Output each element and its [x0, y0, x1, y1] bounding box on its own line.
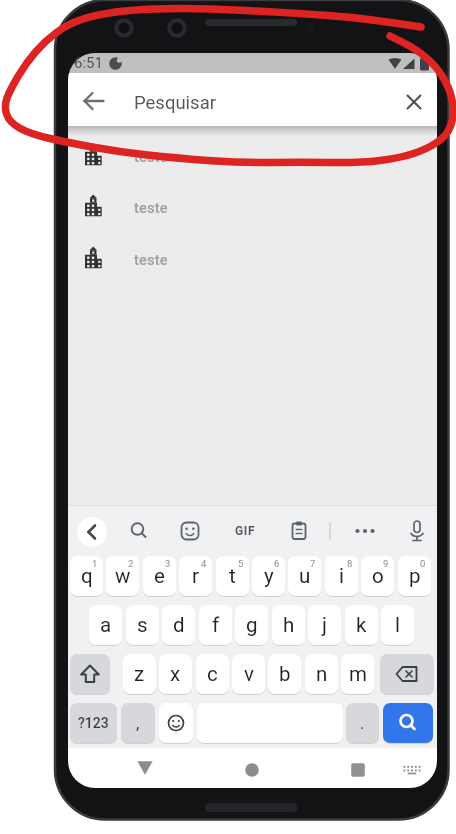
button[interactable]: b	[268, 654, 301, 694]
staticText: 3	[165, 558, 171, 569]
staticText: 6	[274, 558, 280, 569]
button[interactable]	[172, 513, 208, 549]
button[interactable]	[77, 517, 107, 547]
staticText: z	[134, 662, 145, 686]
button[interactable]: u	[288, 556, 321, 596]
staticText: x	[170, 662, 181, 686]
button[interactable]: n	[305, 654, 338, 694]
button[interactable]	[76, 76, 112, 126]
button[interactable]: teste	[68, 131, 437, 183]
button[interactable]: ,	[121, 703, 155, 743]
button[interactable]: k	[345, 605, 378, 645]
staticText: 1	[92, 558, 98, 569]
button[interactable]	[380, 654, 434, 694]
button[interactable]: teste	[68, 182, 437, 234]
button[interactable]: y	[252, 556, 285, 596]
staticText: a	[100, 613, 112, 637]
staticText: f	[212, 613, 220, 637]
staticText: e	[154, 564, 165, 588]
button[interactable]: j	[308, 605, 341, 645]
staticText: m	[349, 662, 367, 686]
button[interactable]	[338, 750, 378, 790]
staticText: teste	[134, 149, 168, 166]
button[interactable]: q	[70, 556, 103, 596]
staticText: 9	[383, 558, 389, 569]
staticText: o	[372, 564, 384, 588]
staticText: t	[229, 564, 236, 588]
staticText: 8	[347, 558, 353, 569]
button[interactable]: h	[272, 605, 305, 645]
staticText: s	[137, 613, 148, 637]
staticText: 6:51	[74, 54, 103, 72]
button[interactable]: m	[341, 654, 374, 694]
staticText: n	[316, 662, 328, 686]
staticText: ?123	[78, 715, 109, 731]
staticText: j	[322, 613, 327, 637]
staticText: l	[395, 613, 400, 637]
button[interactable]: v	[232, 654, 265, 694]
button[interactable]: g	[235, 605, 268, 645]
staticText: g	[246, 613, 258, 637]
staticText: 4	[201, 558, 207, 569]
button[interactable]: l	[381, 605, 414, 645]
button[interactable]: e	[143, 556, 176, 596]
staticText: 7	[310, 558, 316, 569]
button[interactable]: c	[196, 654, 229, 694]
button[interactable]	[397, 85, 431, 119]
button[interactable]: f	[199, 605, 232, 645]
staticText: w	[115, 564, 131, 588]
staticText: GIF	[235, 524, 256, 538]
button[interactable]	[121, 513, 157, 549]
button[interactable]: z	[123, 654, 156, 694]
staticText: q	[81, 564, 93, 588]
button[interactable]: w	[106, 556, 139, 596]
button[interactable]: ?123	[70, 703, 117, 743]
button[interactable]: a	[89, 605, 122, 645]
button[interactable]: teste	[68, 234, 437, 286]
button[interactable]	[392, 750, 432, 790]
staticText: 2	[128, 558, 134, 569]
button[interactable]: x	[159, 654, 192, 694]
button[interactable]	[347, 513, 383, 549]
button[interactable]	[232, 750, 272, 790]
staticText: c	[207, 662, 218, 686]
staticText: 0	[420, 558, 426, 569]
button[interactable]	[399, 513, 435, 549]
button[interactable]: d	[162, 605, 195, 645]
staticText: teste	[134, 200, 168, 217]
button[interactable]: i	[325, 556, 358, 596]
button[interactable]: GIF	[227, 513, 263, 549]
staticText: v	[244, 662, 254, 686]
staticText: r	[192, 564, 199, 588]
staticText: teste	[134, 252, 168, 269]
staticText: h	[283, 613, 295, 637]
staticText: u	[299, 564, 311, 588]
button[interactable]: t	[216, 556, 249, 596]
staticText: d	[173, 613, 185, 637]
button[interactable]	[70, 654, 110, 694]
button[interactable]: o	[361, 556, 394, 596]
button[interactable]	[159, 703, 193, 743]
staticText: ,	[136, 713, 140, 733]
button[interactable]	[383, 703, 433, 743]
button[interactable]: s	[126, 605, 159, 645]
staticText: k	[356, 613, 367, 637]
staticText: 5	[238, 558, 244, 569]
staticText: .	[360, 713, 365, 733]
staticText: i	[339, 564, 344, 588]
button[interactable]: .	[346, 703, 379, 743]
button[interactable]	[281, 513, 317, 549]
button[interactable]	[125, 748, 165, 788]
button[interactable]: p	[398, 556, 431, 596]
staticText: Pesquisar	[134, 92, 217, 114]
staticText: p	[409, 564, 421, 588]
button[interactable]: r	[179, 556, 212, 596]
staticText: b	[279, 662, 291, 686]
staticText: y	[264, 564, 274, 588]
